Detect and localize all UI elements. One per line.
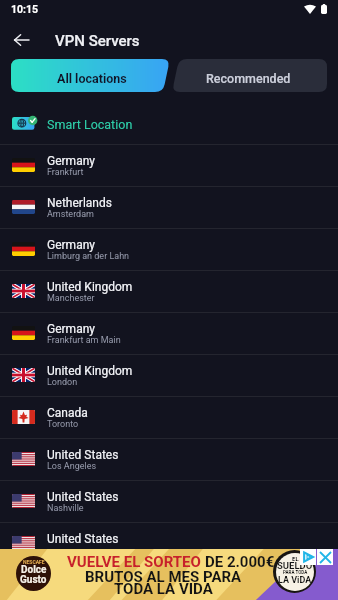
staticText: Manchester	[47, 293, 95, 304]
staticText: United States	[47, 532, 119, 546]
staticText: Limburg an der Lahn	[47, 251, 130, 262]
staticText: Amsterdam	[47, 209, 94, 220]
staticText: Toronto	[47, 419, 79, 430]
button[interactable]: United States	[0, 523, 338, 565]
staticText: Germany	[47, 238, 95, 252]
staticText: PARA TODA	[283, 570, 308, 575]
staticText: VPN Servers	[55, 32, 140, 50]
staticText: Smart Location	[47, 117, 133, 132]
button[interactable]: NESCAFE	[0, 549, 338, 600]
button[interactable]: Germany	[0, 145, 338, 187]
button[interactable]: Canada	[0, 397, 338, 439]
button[interactable]: Ad choices	[300, 549, 316, 565]
button[interactable]: Recommended	[172, 59, 327, 92]
staticText: DE 2.000€	[205, 553, 275, 571]
staticText: Recommended	[206, 71, 291, 86]
staticText: NESCAFE	[23, 559, 45, 565]
staticText: Los Angeles	[47, 461, 97, 472]
staticText: Nashville	[47, 503, 84, 514]
button[interactable]: Germany	[0, 313, 338, 355]
staticText: All locations	[57, 71, 127, 86]
button[interactable]: United States	[0, 439, 338, 481]
staticText: LA ViDA	[278, 575, 312, 586]
staticText: United Kingdom	[47, 364, 133, 378]
button[interactable]: United Kingdom	[0, 271, 338, 313]
button[interactable]: All locations	[11, 59, 170, 92]
staticText: TODA LA VIDA	[114, 580, 213, 595]
staticText: Germany	[47, 154, 95, 168]
staticText: Frankfurt am Main	[47, 335, 121, 346]
staticText: Dolce	[21, 564, 47, 576]
button[interactable]: Back	[5, 24, 37, 56]
staticText: Netherlands	[47, 196, 112, 210]
staticText: London	[47, 377, 78, 388]
staticText: United States	[47, 490, 119, 504]
button[interactable]: United States	[0, 481, 338, 523]
button[interactable]: Germany	[0, 229, 338, 271]
button[interactable]: Smart Location	[0, 103, 338, 145]
button[interactable]: Close ad	[317, 549, 333, 565]
staticText: Germany	[47, 322, 95, 336]
staticText: United Kingdom	[47, 280, 133, 294]
staticText: Gusto	[20, 574, 47, 586]
staticText: VUELVE EL SORTEO	[67, 553, 205, 571]
staticText: SUELDO	[277, 560, 313, 571]
staticText: United States	[47, 448, 119, 462]
button[interactable]: Netherlands	[0, 187, 338, 229]
staticText: EL	[292, 555, 299, 562]
button[interactable]: United Kingdom	[0, 355, 338, 397]
staticText: BRUTOS AL MES PARA	[85, 568, 242, 586]
staticText: Canada	[47, 406, 88, 420]
staticText: Chicago	[47, 545, 80, 556]
staticText: 10:15	[11, 3, 39, 15]
staticText: Frankfurt	[47, 167, 84, 178]
